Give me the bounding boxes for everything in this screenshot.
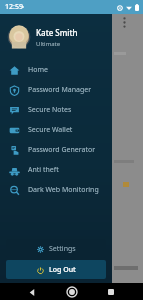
button[interactable]: Dark Web Monitoring [0,180,112,200]
staticText: Secure Wallet [28,125,73,135]
button[interactable]: Secure Wallet [0,120,112,140]
button[interactable]: Password Generator [0,140,112,160]
staticText: Log Out [49,265,76,275]
staticText: 12:59 [5,2,23,12]
staticText: Password Generator [28,145,96,155]
staticText: Kate Smith [36,27,78,38]
staticText: Password Manager [28,85,92,95]
button[interactable]: Secure Notes [0,100,112,120]
button[interactable]: Settings [6,239,106,258]
button[interactable]: Kate Smith [0,14,112,60]
staticText: Home [28,65,48,75]
button[interactable]: Password Manager [0,80,112,100]
button[interactable]: Home [0,60,112,80]
button[interactable]: Log Out [6,260,106,279]
button[interactable]: Back [25,285,39,299]
staticText: Anti theft [28,165,59,175]
staticText: Ultimate [36,40,61,48]
staticText: Dark Web Monitoring [28,185,99,195]
button[interactable]: More options [118,15,130,29]
staticText: Settings [49,244,76,254]
button[interactable]: Anti theft [0,160,112,180]
button[interactable]: Recent apps [104,285,118,299]
button[interactable]: Home [65,285,79,299]
staticText: Secure Notes [28,105,72,115]
